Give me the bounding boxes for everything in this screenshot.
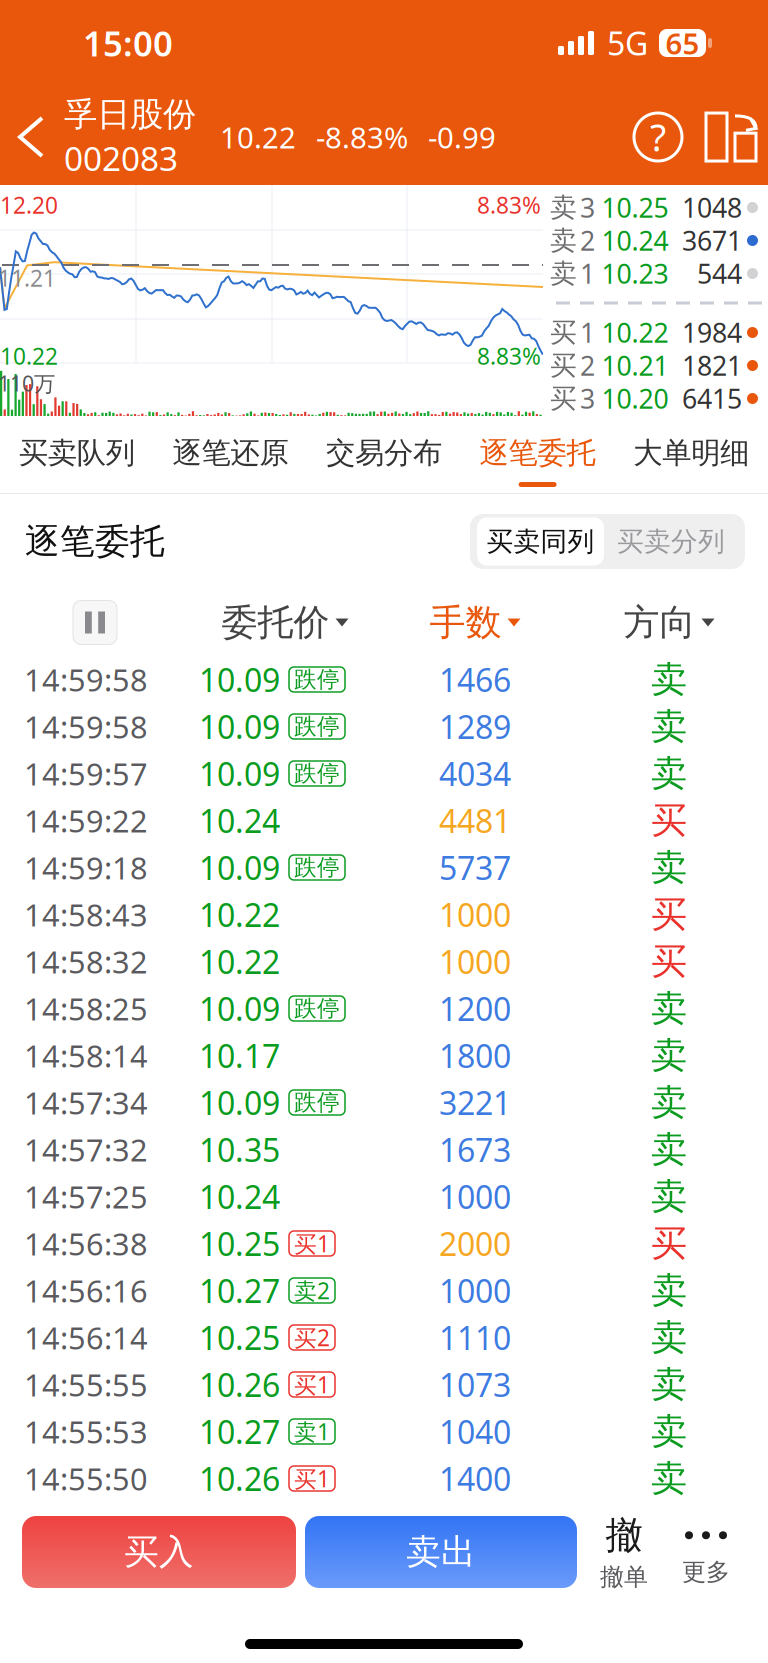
button[interactable]: Back (0, 89, 62, 185)
staticText: 1000 (439, 1269, 511, 1312)
staticText: 15:00 (83, 20, 173, 66)
staticText: 65 (665, 23, 699, 62)
staticText: 卖 (651, 1127, 687, 1172)
staticText: 14:55:50 (24, 1458, 148, 1499)
staticText: 1000 (439, 940, 511, 983)
staticText: 买 (651, 939, 687, 984)
button[interactable]: 买入 (22, 1516, 296, 1588)
staticText: 1673 (439, 1128, 511, 1171)
staticText: 方向 (623, 600, 695, 645)
staticText: 1821 (682, 348, 742, 383)
staticText: 002083 (64, 136, 178, 180)
button[interactable]: 逐笔委托 (461, 417, 614, 493)
staticText: 买 (550, 316, 577, 349)
staticText: 1200 (439, 987, 511, 1030)
staticText: 1 (580, 256, 595, 291)
staticText: 卖 (651, 845, 687, 890)
staticText: 买 (651, 892, 687, 937)
staticText: 10.25 (601, 190, 668, 225)
staticText: 1800 (439, 1034, 511, 1077)
staticText: 10.23 (601, 256, 668, 291)
staticText: 5737 (439, 846, 511, 889)
button[interactable]: Split view (694, 89, 768, 185)
button[interactable]: 更多 (665, 1513, 747, 1591)
staticText: 3 (580, 381, 595, 416)
staticText: 跌停 (294, 1089, 340, 1116)
staticText: 买2 (294, 1322, 330, 1352)
button[interactable]: 卖出 (305, 1516, 577, 1588)
staticText: 14:57:32 (24, 1129, 148, 1170)
staticText: 卖1 (294, 1416, 330, 1446)
staticText: 卖 (651, 1268, 687, 1313)
staticText: 14:56:14 (24, 1317, 148, 1358)
staticText: 14:57:25 (24, 1176, 148, 1217)
button[interactable]: 委托价 (190, 589, 380, 656)
staticText: 10.24 (601, 223, 668, 258)
button[interactable]: 买卖队列 (0, 417, 154, 493)
button[interactable]: 方向 (570, 589, 768, 656)
staticText: 10.25 (199, 1222, 280, 1265)
staticText: 14:58:32 (24, 941, 148, 982)
button[interactable]: 大单明细 (614, 417, 768, 493)
button[interactable]: 逐笔还原 (154, 417, 307, 493)
staticText: 卖 (550, 257, 577, 290)
staticText: 跌停 (294, 666, 340, 693)
staticText: 1073 (439, 1363, 511, 1406)
staticText: 逐笔委托 (25, 520, 165, 563)
staticText: 8.83% (477, 190, 541, 220)
staticText: 4034 (439, 752, 511, 795)
staticText: 10.24 (199, 799, 280, 842)
button[interactable]: Pause (73, 600, 117, 644)
staticText: -8.83% (316, 117, 408, 156)
staticText: 大单明细 (633, 435, 749, 471)
staticText: 10.22 (220, 117, 296, 156)
button[interactable]: 买卖分列 (604, 517, 738, 565)
staticText: 110万 (0, 369, 55, 397)
staticText: 2000 (439, 1222, 511, 1265)
button[interactable]: Help (622, 89, 694, 185)
button[interactable]: 撤 (583, 1513, 665, 1591)
staticText: 1 (580, 315, 595, 350)
staticText: 买1 (294, 1369, 330, 1399)
button[interactable]: 买卖同列 (477, 517, 604, 565)
staticText: 卖 (651, 704, 687, 749)
staticText: 14:58:43 (24, 894, 148, 935)
staticText: 卖 (651, 1080, 687, 1125)
staticText: 1466 (439, 658, 511, 701)
button[interactable]: 交易分布 (307, 417, 461, 493)
staticText: 买 (550, 349, 577, 382)
staticText: 10.35 (199, 1128, 280, 1171)
staticText: 1000 (439, 1175, 511, 1218)
staticText: 10.24 (199, 1175, 280, 1218)
staticText: 逐笔委托 (480, 435, 596, 471)
button[interactable]: 手数 (380, 589, 570, 656)
staticText: 3671 (682, 223, 742, 258)
staticText: 14:59:58 (24, 659, 148, 700)
staticText: 10.27 (199, 1410, 280, 1453)
staticText: 10.22 (199, 940, 280, 983)
staticText: 买 (651, 1221, 687, 1266)
staticText: 10.09 (199, 1081, 280, 1124)
staticText: 4481 (439, 799, 511, 842)
staticText: 买卖分列 (617, 525, 725, 558)
staticText: -0.99 (428, 117, 496, 156)
staticText: 12.20 (0, 190, 58, 220)
staticText: 卖2 (294, 1275, 330, 1305)
staticText: 卖 (550, 191, 577, 224)
staticText: 1000 (439, 893, 511, 936)
staticText: 卖 (651, 1315, 687, 1360)
staticText: 8.83% (477, 341, 541, 371)
staticText: 10.22 (601, 315, 668, 350)
staticText: 跌停 (294, 854, 340, 881)
staticText: 14:59:58 (24, 706, 148, 747)
staticText: 10.21 (601, 348, 668, 383)
staticText: 逐笔还原 (172, 435, 288, 471)
staticText: 手数 (429, 600, 501, 645)
staticText: 2 (580, 223, 595, 258)
staticText: 卖 (651, 1362, 687, 1407)
staticText: 买1 (294, 1228, 330, 1258)
staticText: 卖 (651, 986, 687, 1031)
staticText: 6415 (682, 381, 742, 416)
staticText: 10.20 (601, 381, 668, 416)
staticText: 5G (607, 22, 648, 64)
